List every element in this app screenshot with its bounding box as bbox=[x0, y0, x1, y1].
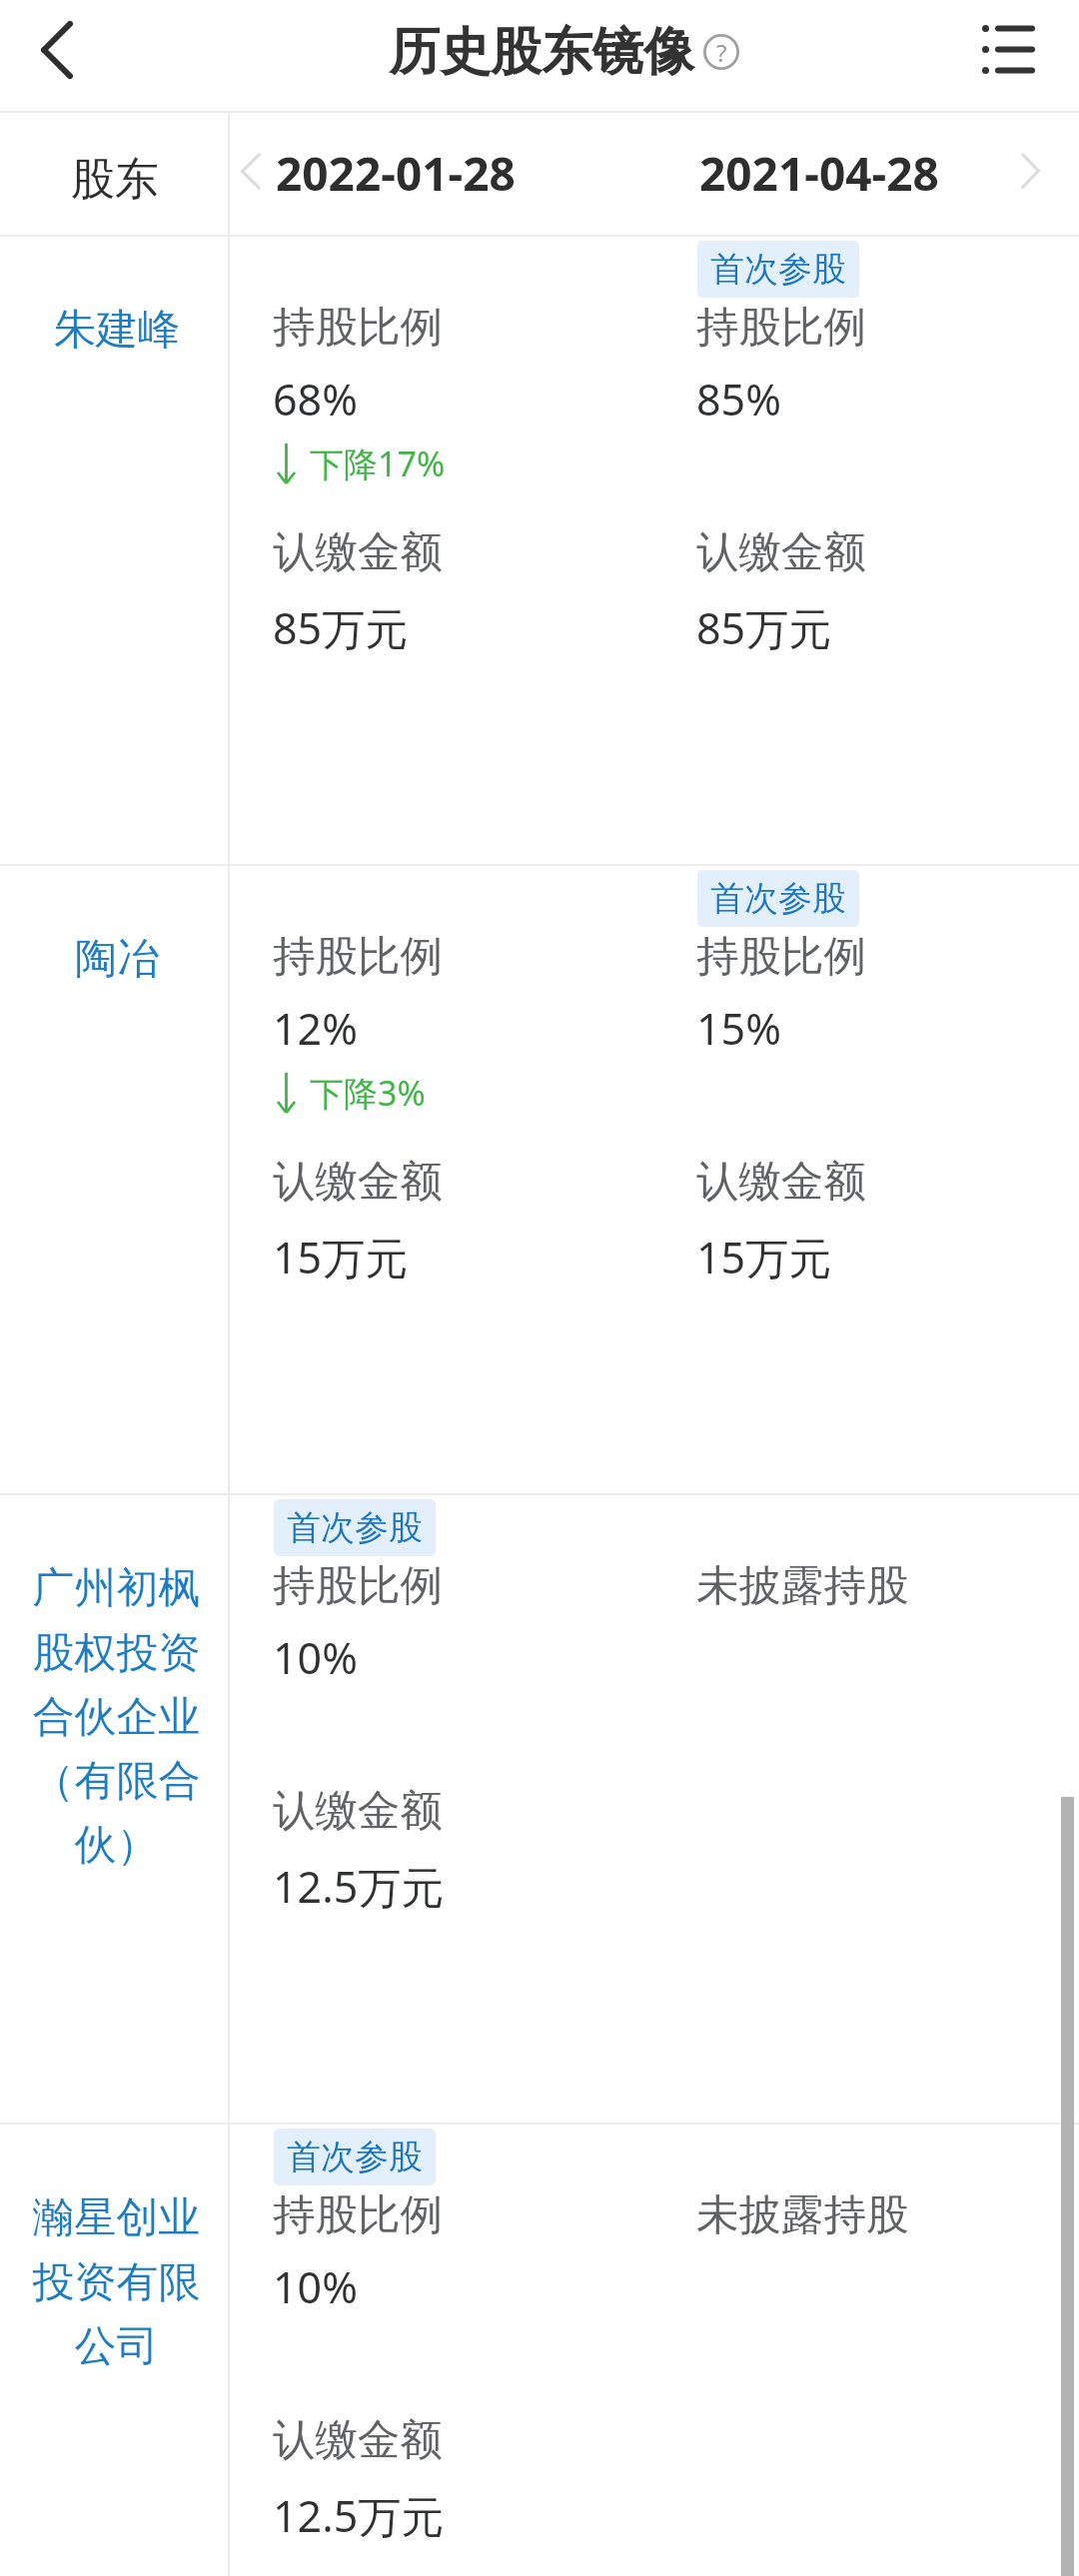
staticText: 12.5万元 bbox=[273, 1857, 445, 1916]
staticText: 15万元 bbox=[273, 1228, 409, 1287]
staticText: 持股比例 bbox=[273, 930, 443, 984]
button[interactable]: 陶冶 bbox=[0, 866, 229, 1493]
staticText: 首次参股 bbox=[710, 248, 846, 291]
staticText: 首次参股 bbox=[287, 2136, 423, 2178]
button[interactable]: 未披露持股 bbox=[653, 1495, 1079, 2123]
staticText: 10% bbox=[273, 2257, 358, 2316]
staticText: 陶冶 bbox=[75, 933, 159, 986]
staticText: 认缴金额 bbox=[273, 525, 443, 579]
staticText: 15% bbox=[696, 999, 781, 1058]
button[interactable]: 首次参股 bbox=[653, 237, 1079, 864]
staticText: 下降3% bbox=[310, 1070, 426, 1116]
button[interactable]: 持股比例 bbox=[229, 237, 653, 864]
staticText: 认缴金额 bbox=[273, 2413, 443, 2467]
button[interactable]: 朱建峰 bbox=[0, 237, 229, 864]
staticText: 85% bbox=[696, 370, 781, 429]
staticText: 朱建峰 bbox=[54, 304, 180, 357]
staticText: 85万元 bbox=[273, 598, 409, 657]
staticText: 认缴金额 bbox=[696, 525, 866, 579]
staticText: 持股比例 bbox=[696, 301, 866, 355]
staticText: 广州初枫股权投资合伙企业（有限合伙） bbox=[16, 1562, 217, 1871]
button[interactable]: 首次参股 bbox=[229, 2125, 653, 2576]
staticText: 10% bbox=[273, 1628, 358, 1687]
staticText: 认缴金额 bbox=[696, 1155, 866, 1209]
staticText: 瀚星创业投资有限公司 bbox=[16, 2191, 217, 2372]
staticText: 股东 bbox=[71, 152, 159, 207]
staticText: 未披露持股 bbox=[696, 2188, 909, 2242]
staticText: 未披露持股 bbox=[696, 1559, 909, 1613]
staticText: 2022-01-28 bbox=[276, 142, 516, 205]
staticText: 首次参股 bbox=[287, 1506, 423, 1549]
staticText: 下降17% bbox=[310, 440, 446, 486]
staticText: 2021-04-28 bbox=[699, 142, 939, 205]
button[interactable]: Previous period bbox=[225, 129, 277, 221]
button[interactable]: 首次参股 bbox=[229, 1495, 653, 2123]
button[interactable]: 股东 bbox=[0, 113, 229, 237]
staticText: 持股比例 bbox=[273, 1559, 443, 1613]
button[interactable]: 2022-01-28 bbox=[265, 113, 654, 237]
button[interactable]: 未披露持股 bbox=[653, 2125, 1079, 2576]
staticText: 认缴金额 bbox=[273, 1784, 443, 1838]
staticText: 认缴金额 bbox=[273, 1155, 443, 1209]
button[interactable]: 广州初枫股权投资合伙企业（有限合伙） bbox=[0, 1495, 229, 2123]
staticText: 历史股东镜像 bbox=[389, 20, 694, 84]
staticText: 12.5万元 bbox=[273, 2486, 445, 2545]
staticText: 持股比例 bbox=[696, 930, 866, 984]
staticText: 15万元 bbox=[696, 1228, 832, 1287]
staticText: 12% bbox=[273, 999, 358, 1058]
staticText: 首次参股 bbox=[710, 877, 846, 920]
button[interactable]: List menu bbox=[959, 0, 1059, 99]
staticText: 68% bbox=[273, 370, 358, 429]
staticText: ? bbox=[716, 36, 727, 69]
button[interactable]: 首次参股 bbox=[653, 866, 1079, 1493]
staticText: 85万元 bbox=[696, 598, 832, 657]
button[interactable]: 瀚星创业投资有限公司 bbox=[0, 2125, 229, 2576]
button[interactable]: 2021-04-28 bbox=[688, 113, 1078, 237]
staticText: 持股比例 bbox=[273, 301, 443, 355]
staticText: 持股比例 bbox=[273, 2188, 443, 2242]
button[interactable]: Back bbox=[14, 0, 100, 99]
button[interactable]: Next period bbox=[1003, 129, 1055, 221]
button[interactable]: 持股比例 bbox=[229, 866, 653, 1493]
